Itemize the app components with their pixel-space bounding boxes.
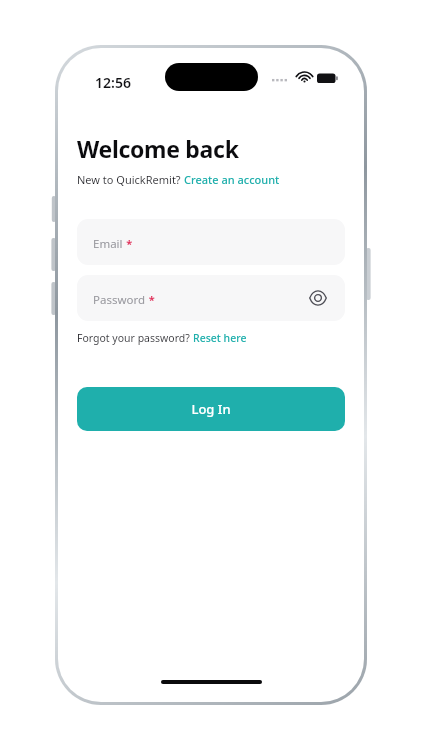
button[interactable]: Log In [77,387,345,431]
staticText: New to QuickRemit? [77,172,184,187]
button[interactable]: Create an account [184,172,280,187]
button[interactable]: Reset here [193,331,247,345]
button[interactable]: Show password [307,287,329,309]
button[interactable]: Password * [77,275,345,321]
staticText: Password * [93,289,155,308]
staticText: Forgot your password? [77,331,193,345]
staticText: Log In [191,400,231,418]
staticText: Email * [93,233,133,252]
staticText: Create an account [184,172,280,187]
staticText: 12:56 [95,73,131,92]
button[interactable]: Email * [77,219,345,265]
staticText: Reset here [193,331,247,345]
staticText: Welcome back [77,133,239,164]
